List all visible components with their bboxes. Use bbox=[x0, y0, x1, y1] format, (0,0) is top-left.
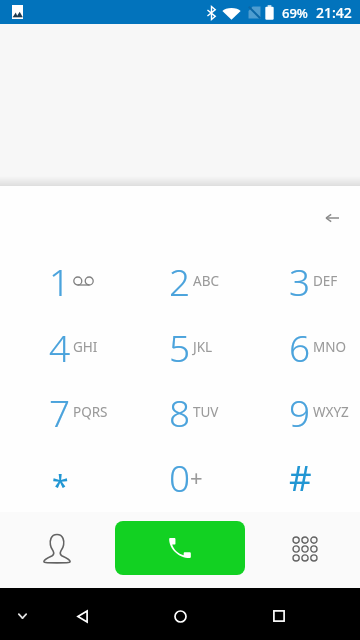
staticText: TUV bbox=[193, 403, 219, 421]
button[interactable]: 9 bbox=[240, 379, 360, 444]
button[interactable]: 4 bbox=[0, 314, 120, 379]
button[interactable]: Contacts bbox=[0, 510, 115, 586]
staticText: 1 bbox=[49, 256, 71, 306]
staticText: 3 bbox=[289, 256, 311, 306]
staticText: WXYZ bbox=[313, 403, 349, 421]
button[interactable]: Hide keyboard bbox=[2, 596, 42, 636]
button[interactable]: 6 bbox=[240, 314, 360, 379]
staticText: GHI bbox=[73, 338, 98, 356]
staticText: DEF bbox=[313, 272, 338, 290]
button[interactable]: Home bbox=[160, 596, 200, 636]
button[interactable]: 2 bbox=[120, 248, 240, 314]
staticText: MNO bbox=[313, 338, 347, 356]
staticText: + bbox=[190, 462, 203, 492]
staticText: JKL bbox=[193, 338, 213, 356]
staticText: 6 bbox=[289, 322, 311, 372]
staticText: * bbox=[52, 465, 69, 506]
staticText: PQRS bbox=[73, 403, 108, 421]
button[interactable]: # bbox=[240, 444, 360, 509]
button[interactable]: 5 bbox=[120, 314, 240, 379]
button[interactable]: 0 bbox=[120, 444, 240, 509]
staticText: 9 bbox=[289, 387, 311, 437]
staticText: 5 bbox=[169, 322, 191, 372]
staticText: 4 bbox=[49, 322, 71, 372]
staticText: 0 bbox=[169, 452, 191, 502]
staticText: # bbox=[289, 454, 312, 502]
button[interactable]: 3 bbox=[240, 248, 360, 314]
button[interactable]: 1 bbox=[0, 248, 120, 314]
button[interactable]: * bbox=[0, 444, 120, 509]
button[interactable]: Call bbox=[115, 521, 245, 575]
staticText: 21:42 bbox=[316, 3, 352, 22]
button[interactable]: Recents bbox=[259, 596, 299, 636]
staticText: 7 bbox=[49, 387, 71, 437]
button[interactable]: Back bbox=[62, 596, 102, 636]
button[interactable]: 7 bbox=[0, 379, 120, 444]
staticText: ABC bbox=[193, 272, 219, 290]
staticText: 2 bbox=[169, 256, 191, 306]
staticText: 69% bbox=[282, 4, 308, 22]
button[interactable]: 8 bbox=[120, 379, 240, 444]
button[interactable]: Dialpad bbox=[245, 510, 360, 586]
staticText: 8 bbox=[169, 387, 191, 437]
button[interactable]: Backspace bbox=[310, 196, 354, 240]
